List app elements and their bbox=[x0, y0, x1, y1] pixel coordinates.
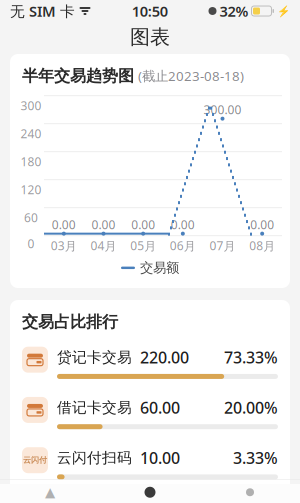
staticText: 3.33% bbox=[233, 447, 278, 468]
staticText: 20.00% bbox=[224, 397, 278, 418]
staticText: 180 bbox=[20, 154, 41, 170]
staticText: 0.00 bbox=[91, 217, 115, 233]
staticText: 0.00 bbox=[250, 217, 274, 233]
staticText: 300 bbox=[20, 98, 41, 114]
staticText: 0.00 bbox=[171, 217, 195, 233]
staticText: 10.00 bbox=[140, 447, 180, 468]
staticText: 借记卡交易 bbox=[57, 398, 132, 416]
staticText: 无 SIM 卡 bbox=[10, 1, 75, 21]
staticText: 73.33% bbox=[224, 347, 278, 368]
staticText: 05月 bbox=[130, 238, 156, 254]
button[interactable]: 贷记卡交易 bbox=[10, 338, 290, 388]
staticText: 图表 bbox=[130, 25, 170, 49]
staticText: 04月 bbox=[90, 238, 116, 254]
button[interactable]: 图表 bbox=[100, 487, 200, 498]
staticText: 云闪付 bbox=[23, 455, 47, 465]
staticText: 贷记卡交易 bbox=[57, 348, 132, 366]
staticText: 07月 bbox=[209, 238, 235, 254]
staticText: 08月 bbox=[249, 238, 275, 254]
staticText: ▲ bbox=[45, 485, 55, 500]
staticText: 120 bbox=[20, 182, 41, 198]
staticText: 交易额 bbox=[140, 260, 179, 276]
staticText: 60.00 bbox=[140, 397, 180, 418]
staticText: 32% bbox=[219, 1, 248, 21]
button[interactable]: 借记卡交易 bbox=[10, 388, 290, 438]
staticText: 云闪付扫码 bbox=[57, 449, 132, 467]
staticText: 0.00 bbox=[131, 217, 155, 233]
staticText: ⚡ bbox=[277, 5, 290, 17]
staticText: 0.00 bbox=[52, 217, 76, 233]
staticText: 300.00 bbox=[203, 102, 241, 118]
staticText: 220.00 bbox=[140, 347, 189, 368]
staticText: 03月 bbox=[51, 238, 77, 254]
staticText: 240 bbox=[20, 126, 41, 142]
staticText: 半年交易趋势图 bbox=[22, 66, 134, 86]
button[interactable]: 首页 bbox=[0, 485, 100, 500]
staticText: 10:50 bbox=[132, 1, 168, 21]
staticText: 06月 bbox=[170, 238, 196, 254]
button[interactable]: 我的 bbox=[200, 488, 300, 496]
button[interactable]: 云闪付 bbox=[10, 438, 290, 488]
staticText: 0 bbox=[27, 236, 34, 252]
staticText: 交易占比排行 bbox=[22, 312, 118, 332]
staticText: (截止2023-08-18) bbox=[138, 67, 244, 85]
staticText: 60 bbox=[24, 210, 38, 226]
